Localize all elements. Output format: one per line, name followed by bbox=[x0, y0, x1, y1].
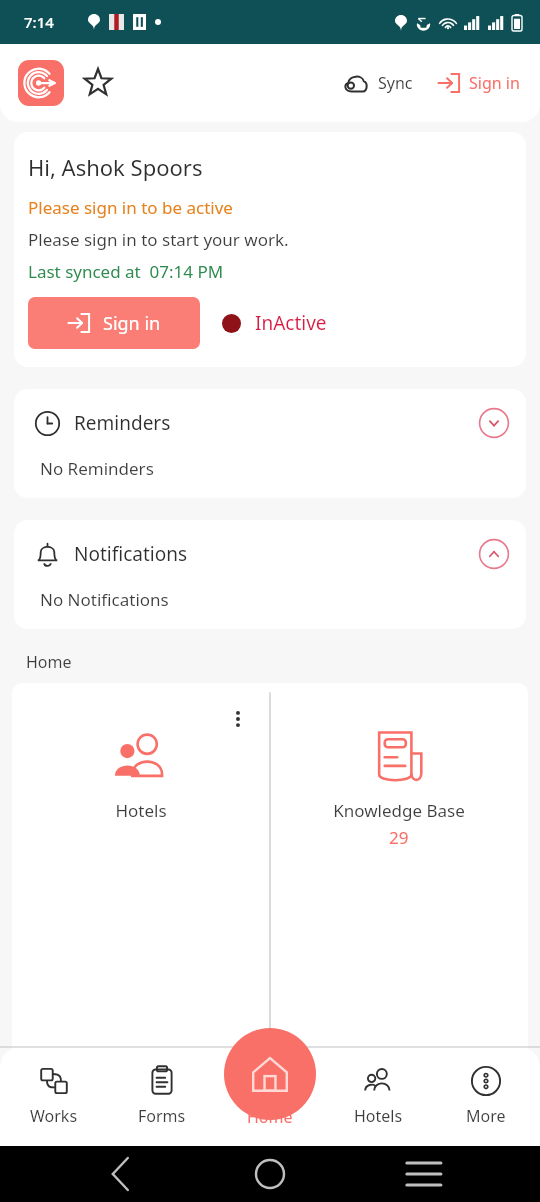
staticText: Hi, Ashok Spoors bbox=[28, 152, 203, 182]
button[interactable]: Hotels bbox=[12, 683, 270, 1146]
staticText: Home bbox=[26, 651, 72, 673]
staticText: More bbox=[466, 1105, 506, 1127]
button[interactable]: Favourites bbox=[78, 63, 118, 103]
staticText: 29 bbox=[389, 826, 409, 849]
staticText: Sign in bbox=[469, 72, 520, 94]
staticText: Sync bbox=[378, 72, 413, 94]
button[interactable]: Reminders bbox=[14, 389, 526, 498]
staticText: Please sign in to start your work. bbox=[28, 228, 289, 251]
button[interactable]: App logo bbox=[18, 60, 64, 106]
button[interactable]: Knowledge Base bbox=[270, 683, 528, 1146]
staticText: Works bbox=[30, 1105, 78, 1127]
button[interactable]: Forms bbox=[108, 1046, 216, 1146]
staticText: No Notifications bbox=[40, 588, 169, 611]
staticText: Knowledge Base bbox=[333, 799, 465, 822]
staticText: Please sign in to be active bbox=[28, 196, 233, 219]
button[interactable]: Sign in bbox=[433, 65, 524, 101]
button[interactable]: More bbox=[432, 1046, 540, 1146]
button[interactable]: More options bbox=[478, 1058, 508, 1088]
staticText: Forms bbox=[138, 1105, 186, 1127]
button[interactable]: Collapse bbox=[476, 536, 512, 572]
button[interactable]: Hotels bbox=[324, 1046, 432, 1146]
staticText: Home bbox=[247, 1106, 293, 1128]
button[interactable]: Expand bbox=[476, 405, 512, 441]
staticText: Reminders bbox=[74, 410, 171, 436]
button[interactable]: Sign in bbox=[28, 297, 200, 349]
button[interactable]: Notifications bbox=[14, 520, 526, 629]
staticText: Hotels bbox=[115, 799, 167, 822]
staticText: InActive bbox=[255, 310, 327, 336]
button[interactable]: Works bbox=[0, 1046, 108, 1146]
staticText: Sign in bbox=[103, 311, 161, 336]
button[interactable]: Home bbox=[224, 1028, 316, 1120]
staticText: Hotels bbox=[354, 1105, 403, 1127]
button[interactable]: Sync bbox=[336, 66, 419, 100]
staticText: No Reminders bbox=[40, 457, 154, 480]
staticText: 7:14 bbox=[24, 12, 54, 32]
button[interactable]: More options bbox=[224, 705, 252, 733]
staticText: Last synced at 07:14 PM bbox=[28, 260, 224, 283]
staticText: Notifications bbox=[74, 541, 188, 567]
